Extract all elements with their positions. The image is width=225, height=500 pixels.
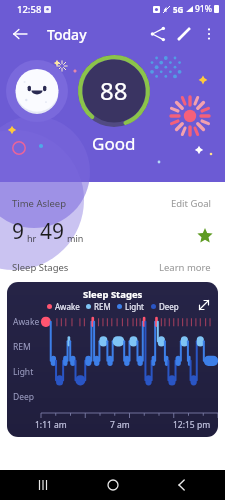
- staticText: 5G: [173, 4, 184, 15]
- button[interactable]: Back: [8, 22, 32, 46]
- staticText: REM: [94, 301, 111, 312]
- staticText: 91%: [195, 3, 212, 15]
- staticText: Sleep Stages: [12, 261, 69, 274]
- staticText: Deep: [13, 391, 35, 403]
- staticText: 7 am: [110, 419, 130, 431]
- staticText: 12:15 pm: [173, 419, 211, 431]
- staticText: min: [67, 232, 84, 244]
- staticText: Deep: [159, 301, 179, 312]
- staticText: Edit Goal: [171, 197, 211, 210]
- button[interactable]: Edit: [171, 21, 197, 47]
- staticText: Learn more: [159, 261, 211, 274]
- button[interactable]: Edit Goal: [169, 196, 213, 211]
- staticText: hr: [27, 232, 37, 244]
- staticText: 1:11 am: [35, 419, 67, 431]
- staticText: 49: [40, 217, 65, 246]
- staticText: Light: [13, 366, 34, 378]
- button[interactable]: Home: [100, 472, 126, 498]
- button[interactable]: More options: [197, 22, 221, 46]
- button[interactable]: Sleep Stages: [7, 282, 218, 437]
- staticText: Awake: [55, 301, 80, 312]
- staticText: Time Asleep: [12, 197, 67, 210]
- staticText: REM: [13, 341, 31, 353]
- button[interactable]: Learn more: [157, 260, 213, 275]
- staticText: 88: [100, 74, 128, 107]
- button[interactable]: Share: [145, 21, 171, 47]
- staticText: Today: [47, 25, 87, 44]
- staticText: 9: [12, 217, 25, 246]
- button[interactable]: Recent apps: [30, 472, 56, 498]
- staticText: Sleep Stages: [83, 288, 143, 301]
- button[interactable]: Back: [169, 472, 195, 498]
- staticText: Awake: [13, 316, 40, 328]
- button[interactable]: Expand chart: [195, 296, 213, 314]
- staticText: 12:58: [17, 3, 42, 16]
- staticText: Good: [92, 132, 136, 155]
- staticText: Light: [125, 301, 145, 312]
